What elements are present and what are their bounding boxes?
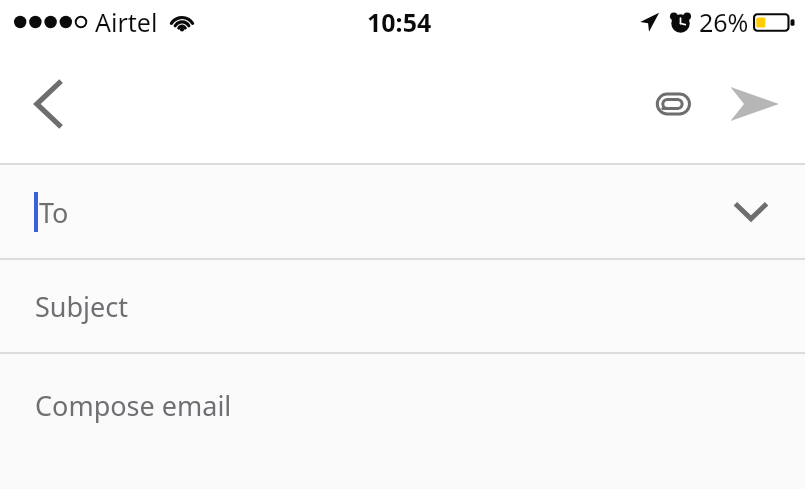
staticText: Subject	[35, 288, 129, 325]
button[interactable]: Attach file	[635, 67, 709, 141]
staticText: 10:54	[367, 5, 432, 39]
button[interactable]: Subject	[0, 260, 805, 352]
button[interactable]: Send	[717, 67, 791, 141]
staticText: 26%	[699, 5, 749, 39]
staticText: Airtel	[95, 5, 158, 39]
staticText: To	[39, 194, 69, 231]
staticText: Compose email	[35, 387, 232, 424]
button[interactable]: Expand recipients	[723, 184, 779, 240]
button[interactable]: Back	[10, 66, 86, 142]
button[interactable]: Compose email	[0, 354, 805, 489]
button[interactable]: To	[0, 165, 805, 258]
